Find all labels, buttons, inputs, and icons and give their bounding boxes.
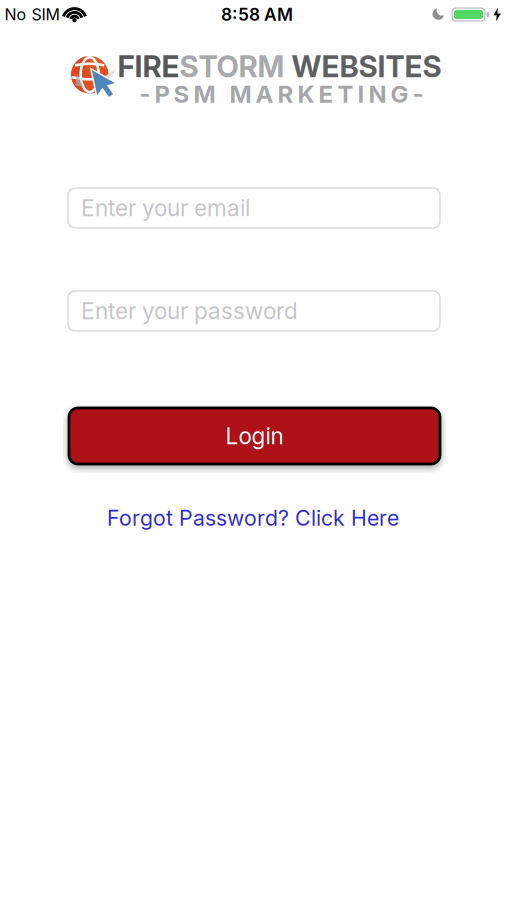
button[interactable]: Enter your password: [68, 291, 440, 331]
staticText: 8:58 AM: [221, 4, 293, 25]
button[interactable]: Login: [69, 408, 440, 464]
staticText: FIRE: [117, 49, 179, 84]
staticText: Enter your email: [81, 195, 250, 221]
staticText: Enter your password: [81, 298, 298, 324]
button[interactable]: Forgot Password? Click Here: [107, 505, 399, 531]
staticText: WEBSITES: [284, 49, 441, 84]
staticText: No SIM: [4, 5, 59, 24]
staticText: Login: [225, 423, 283, 449]
button[interactable]: Enter your email: [68, 188, 440, 228]
staticText: - P S M M A R K E T I N G -: [139, 80, 423, 108]
staticText: Forgot Password? Click Here: [107, 505, 399, 531]
staticText: STORM: [179, 49, 284, 84]
